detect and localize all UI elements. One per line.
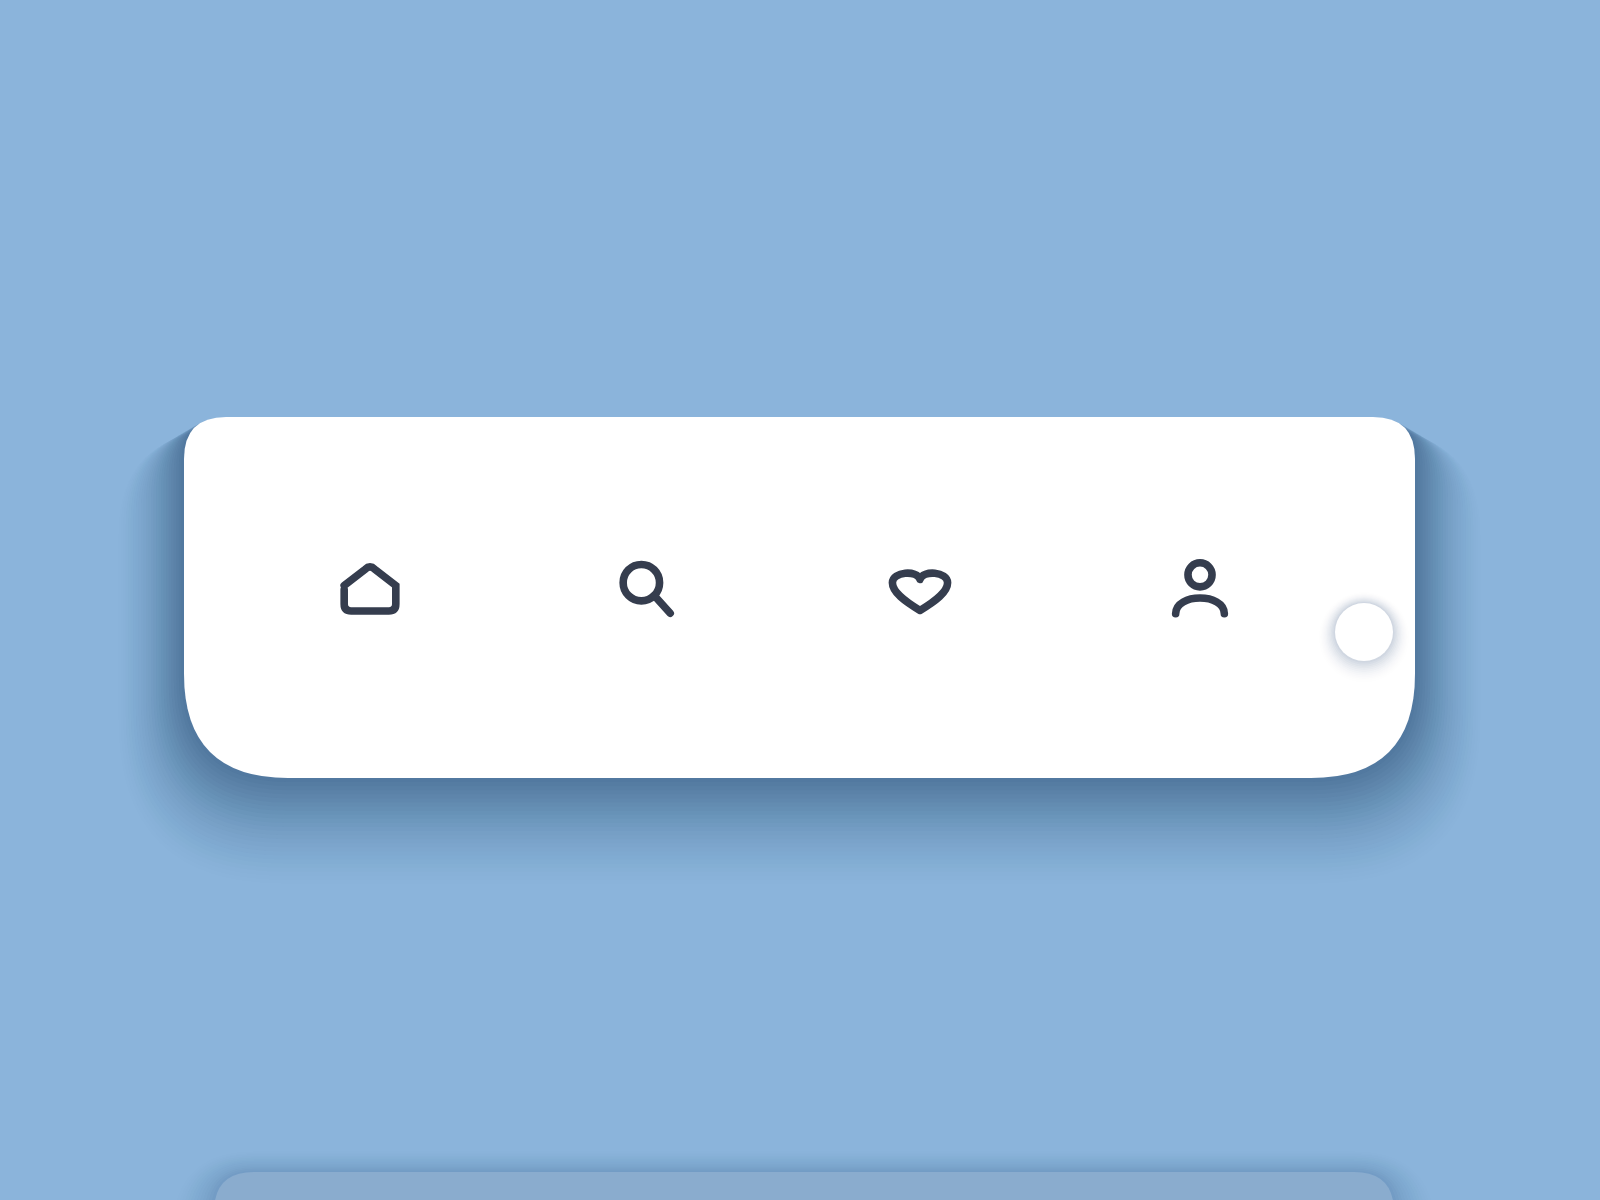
button[interactable]: Profile — [1144, 532, 1256, 644]
button[interactable]: Favorites — [864, 532, 976, 644]
button[interactable]: Home — [314, 532, 426, 644]
button[interactable]: More — [1335, 603, 1393, 661]
button[interactable]: Search — [589, 532, 701, 644]
